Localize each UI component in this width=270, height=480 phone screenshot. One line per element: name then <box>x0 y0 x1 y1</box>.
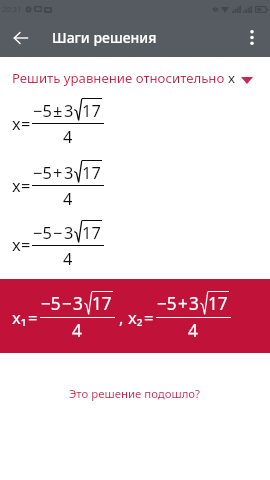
staticText: x <box>12 112 21 134</box>
staticText: , <box>119 306 124 328</box>
staticText: 4 <box>188 319 198 342</box>
staticText: 3 <box>189 292 199 315</box>
button[interactable]: Решить уравнение относительно <box>0 57 270 98</box>
staticText: x₁ <box>12 306 27 328</box>
staticText: Решить уравнение относительно <box>12 69 228 87</box>
staticText: 20:31 <box>2 4 22 14</box>
staticText: 3 <box>64 221 74 243</box>
staticText: − <box>53 221 63 243</box>
button[interactable]: Back <box>0 18 42 57</box>
staticText: x <box>12 174 21 196</box>
staticText: x <box>12 233 21 255</box>
button[interactable]: Это решение подошло? <box>61 382 209 406</box>
staticText: + <box>53 161 63 183</box>
staticText: = <box>21 174 31 196</box>
staticText: = <box>28 306 38 328</box>
staticText: + <box>178 292 188 315</box>
button[interactable]: x₁ <box>0 279 270 353</box>
staticText: −5 <box>41 292 61 315</box>
button[interactable]: More options <box>234 18 270 57</box>
staticText: 4 <box>72 319 82 342</box>
staticText: 4 <box>63 247 73 269</box>
staticText: −5 <box>33 221 52 243</box>
staticText: 17 <box>82 161 101 183</box>
staticText: 3 <box>73 292 83 315</box>
staticText: x <box>228 69 235 87</box>
staticText: − <box>62 292 72 315</box>
staticText: x₂ <box>128 306 143 328</box>
staticText: ± <box>53 99 63 121</box>
staticText: 17 <box>82 99 101 121</box>
staticText: 17 <box>82 221 101 243</box>
staticText: = <box>21 233 31 255</box>
staticText: 17 <box>92 292 112 315</box>
staticText: −5 <box>157 292 177 315</box>
staticText: 17 <box>208 292 228 315</box>
staticText: 4 <box>63 125 73 147</box>
staticText: 3 <box>64 99 74 121</box>
staticText: 3 <box>64 161 74 183</box>
staticText: = <box>144 306 154 328</box>
staticText: −5 <box>33 99 52 121</box>
staticText: −5 <box>33 161 52 183</box>
staticText: 4 <box>63 187 73 209</box>
staticText: Шаги решения <box>52 28 157 47</box>
staticText: = <box>21 112 31 134</box>
